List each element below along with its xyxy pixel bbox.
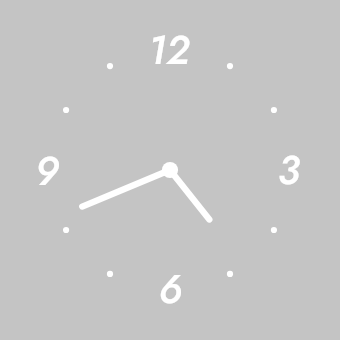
button[interactable]: Analog clock, 4:41 <box>0 0 340 340</box>
